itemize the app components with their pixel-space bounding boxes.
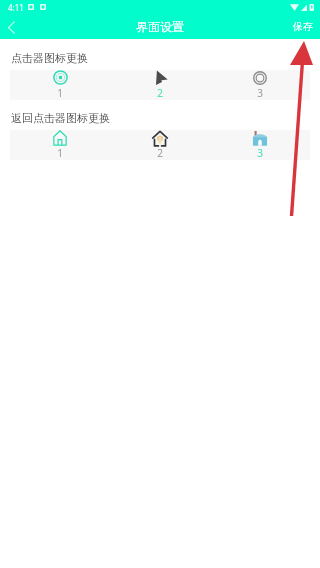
staticText: 2 [157, 86, 163, 100]
button[interactable]: 2 [110, 130, 210, 160]
button[interactable]: 1 [10, 70, 110, 100]
staticText: 4:11 [8, 2, 24, 13]
staticText: 保存 [293, 20, 313, 33]
button[interactable]: 1 [10, 130, 110, 160]
staticText: 1 [57, 146, 63, 160]
button[interactable]: 3 [210, 70, 310, 100]
staticText: 3 [257, 146, 263, 160]
button[interactable]: 2 [110, 70, 210, 100]
staticText: 3 [257, 86, 263, 100]
button[interactable]: 3 [210, 130, 310, 160]
button[interactable]: 保存 [283, 14, 320, 39]
staticText: 界面设置 [136, 19, 184, 34]
staticText: 点击器图标更换 [11, 51, 88, 65]
staticText: 返回点击器图标更换 [11, 111, 110, 125]
staticText: 1 [57, 86, 63, 100]
button[interactable]: Back [0, 16, 22, 38]
staticText: 2 [157, 146, 163, 160]
